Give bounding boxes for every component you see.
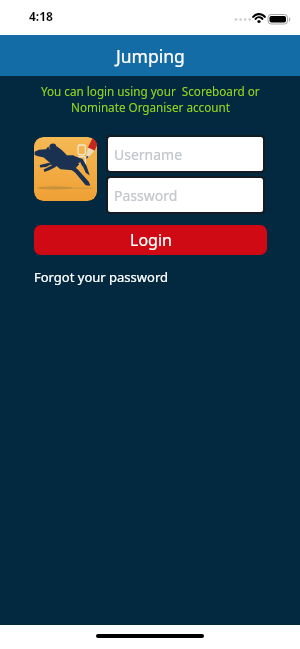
staticText: Nominate Organiser account (71, 99, 230, 115)
staticText: Login (130, 229, 172, 251)
staticText: You can login using your Scoreboard or (41, 83, 260, 99)
staticText: Username (114, 145, 183, 164)
staticText: 4:18 (29, 8, 53, 24)
button[interactable]: Password (108, 178, 263, 212)
button[interactable]: Login (34, 225, 267, 255)
button[interactable]: Username (108, 137, 263, 171)
staticText: Jumping (116, 44, 185, 68)
button[interactable]: Forgot your password (34, 268, 168, 286)
button[interactable] (34, 137, 97, 201)
staticText: Password (114, 186, 178, 205)
